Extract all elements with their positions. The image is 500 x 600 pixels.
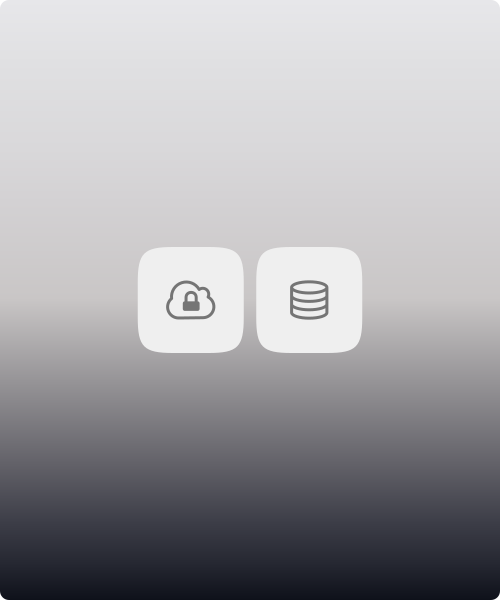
button[interactable]: Database: [256, 247, 362, 353]
button[interactable]: Private Cloud: [138, 247, 244, 353]
